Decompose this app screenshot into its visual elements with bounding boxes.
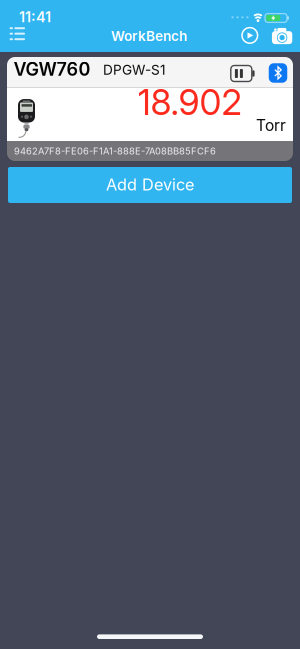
staticText: WorkBench [111,28,187,44]
button[interactable]: Run [239,24,261,46]
button[interactable]: Bluetooth [269,63,287,83]
staticText: DPGW-S1 [103,61,166,78]
staticText: Torr [256,116,286,135]
staticText: VGW760 [13,58,90,80]
staticText: Add Device [106,175,194,194]
staticText: 18.902 [137,81,241,124]
staticText: 11:41 [19,8,51,26]
button[interactable]: Camera [270,27,294,45]
button[interactable]: Add Device [8,167,292,203]
staticText: 9462A7F8-FE06-F1A1-888E-7A08BB85FCF6 [14,145,216,157]
button[interactable]: Menu [0,0,34,52]
button[interactable]: VGW760 [7,57,293,87]
